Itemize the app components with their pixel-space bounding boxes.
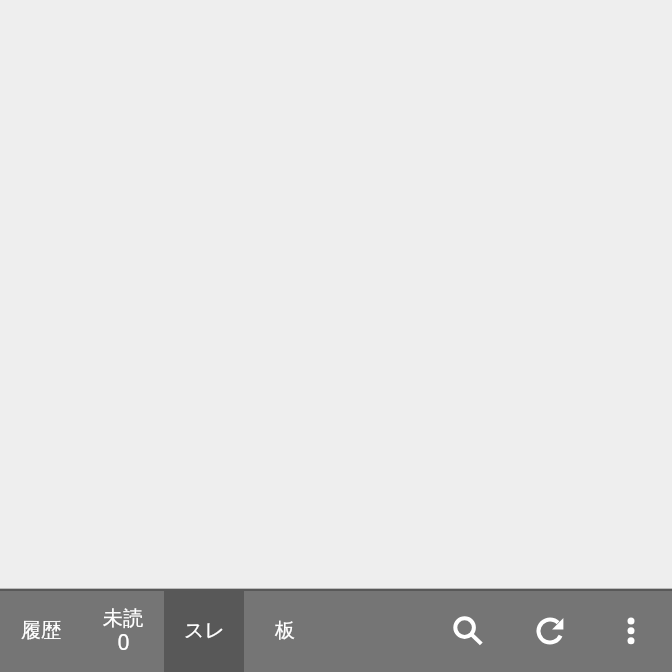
button[interactable]: More options xyxy=(607,607,655,655)
button[interactable]: 未読 xyxy=(82,591,164,672)
button[interactable]: Reload xyxy=(526,607,574,655)
button[interactable]: スレ xyxy=(164,591,244,672)
staticText: 0 xyxy=(117,628,130,657)
staticText: 履歴 xyxy=(21,618,61,643)
button[interactable]: 履歴 xyxy=(0,591,82,672)
staticText: 板 xyxy=(275,618,295,643)
staticText: スレ xyxy=(184,618,225,643)
staticText: 未読 xyxy=(103,606,143,631)
button[interactable]: 板 xyxy=(244,591,326,672)
button[interactable]: Search xyxy=(447,610,495,658)
